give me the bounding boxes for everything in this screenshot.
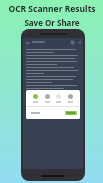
button[interactable]: Share — [77, 40, 81, 44]
button[interactable]: Back — [25, 40, 30, 45]
button[interactable]: Cancel — [29, 111, 42, 115]
button[interactable]: Copy — [70, 40, 74, 44]
staticText: OCR Scanner Results — [8, 3, 96, 15]
button[interactable]: Save to files — [32, 93, 39, 104]
staticText: Save Or Share — [24, 17, 80, 28]
button[interactable]: Messages — [44, 93, 51, 104]
button[interactable]: Save — [65, 111, 77, 115]
button[interactable]: More — [67, 93, 74, 104]
button[interactable]: Drive — [55, 93, 62, 104]
